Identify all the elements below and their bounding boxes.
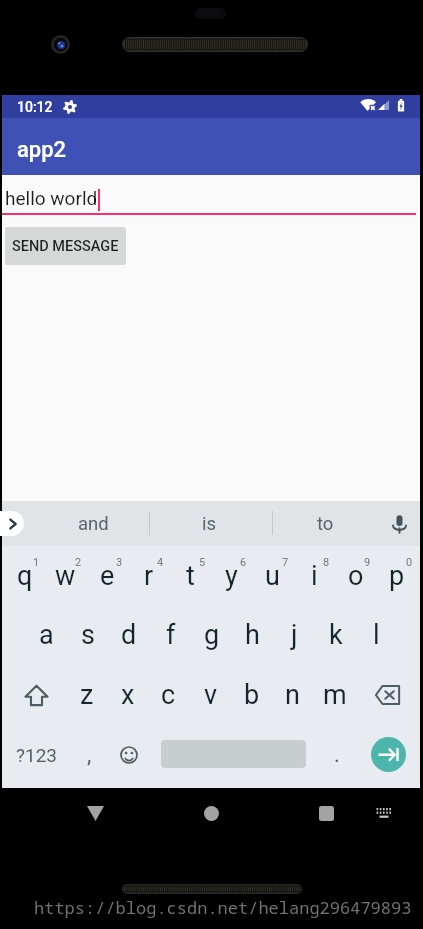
button[interactable]: r bbox=[128, 546, 169, 606]
staticText: t bbox=[186, 560, 195, 592]
button[interactable]: Home bbox=[189, 791, 233, 835]
button[interactable]: Shift bbox=[14, 665, 59, 725]
staticText: c bbox=[161, 679, 176, 711]
staticText: s bbox=[81, 619, 95, 651]
staticText: q bbox=[17, 560, 33, 592]
button[interactable]: to bbox=[280, 501, 370, 546]
button[interactable]: p bbox=[376, 546, 417, 606]
staticText: w bbox=[55, 560, 76, 592]
button[interactable]: Expand suggestions bbox=[0, 511, 24, 536]
staticText: l bbox=[373, 619, 380, 651]
button[interactable]: ?123 bbox=[10, 725, 64, 785]
staticText: i bbox=[311, 560, 318, 592]
staticText: 9 bbox=[364, 556, 371, 569]
staticText: y bbox=[225, 560, 238, 592]
staticText: e bbox=[100, 560, 115, 592]
button[interactable]: a bbox=[26, 605, 67, 665]
button[interactable]: l bbox=[356, 605, 397, 665]
button[interactable]: Switch keyboard bbox=[362, 791, 406, 835]
staticText: 6 bbox=[240, 556, 247, 569]
staticText: https://blog.csdn.net/helang296479893 bbox=[34, 896, 412, 919]
button[interactable]: e bbox=[87, 546, 128, 606]
staticText: to bbox=[317, 513, 334, 535]
staticText: k bbox=[329, 619, 343, 651]
staticText: 10:12 bbox=[17, 99, 53, 115]
button[interactable]: w bbox=[45, 546, 86, 606]
staticText: 3 bbox=[116, 556, 123, 569]
button[interactable]: Back bbox=[73, 791, 117, 835]
button[interactable]: k bbox=[315, 605, 356, 665]
staticText: hello world bbox=[5, 187, 98, 209]
staticText: p bbox=[389, 560, 405, 592]
staticText: 7 bbox=[282, 556, 289, 569]
button[interactable]: y bbox=[211, 546, 252, 606]
button[interactable]: j bbox=[274, 605, 315, 665]
button[interactable]: f bbox=[150, 605, 191, 665]
button[interactable]: g bbox=[191, 605, 232, 665]
button[interactable]: n bbox=[272, 665, 313, 725]
button[interactable]: t bbox=[170, 546, 211, 606]
staticText: 5 bbox=[199, 556, 206, 569]
staticText: a bbox=[39, 619, 54, 651]
staticText: o bbox=[348, 560, 364, 592]
staticText: 4 bbox=[157, 556, 164, 569]
button[interactable]: , bbox=[69, 725, 110, 785]
staticText: . bbox=[334, 742, 340, 768]
staticText: ?123 bbox=[16, 744, 58, 766]
staticText: d bbox=[121, 619, 137, 651]
staticText: n bbox=[285, 679, 300, 711]
staticText: m bbox=[323, 679, 347, 711]
button[interactable]: Enter bbox=[371, 737, 406, 772]
button[interactable]: o bbox=[335, 546, 376, 606]
button[interactable]: Backspace bbox=[365, 665, 410, 725]
button[interactable]: b bbox=[231, 665, 272, 725]
button[interactable]: u bbox=[252, 546, 293, 606]
staticText: 8 bbox=[323, 556, 330, 569]
staticText: SEND MESSAGE bbox=[12, 238, 119, 255]
staticText: g bbox=[204, 619, 220, 651]
button[interactable]: Emoji bbox=[108, 725, 149, 785]
button[interactable]: s bbox=[67, 605, 108, 665]
staticText: , bbox=[87, 742, 92, 768]
button[interactable]: c bbox=[148, 665, 189, 725]
staticText: z bbox=[80, 679, 94, 711]
button[interactable]: is bbox=[164, 501, 254, 546]
button[interactable]: m bbox=[314, 665, 355, 725]
button[interactable]: hello world bbox=[2, 175, 420, 215]
staticText: 2 bbox=[75, 556, 82, 569]
button[interactable]: x bbox=[107, 665, 148, 725]
button[interactable]: z bbox=[66, 665, 107, 725]
button[interactable]: and bbox=[48, 501, 138, 546]
button[interactable]: h bbox=[232, 605, 273, 665]
staticText: f bbox=[166, 619, 176, 651]
staticText: x bbox=[121, 679, 135, 711]
staticText: b bbox=[244, 679, 260, 711]
staticText: 0 bbox=[406, 556, 413, 569]
button[interactable]: d bbox=[108, 605, 149, 665]
button[interactable]: Voice input bbox=[384, 509, 414, 539]
staticText: is bbox=[202, 513, 217, 535]
button[interactable]: . bbox=[316, 725, 357, 785]
staticText: v bbox=[204, 679, 218, 711]
button[interactable]: Recent apps bbox=[304, 791, 348, 835]
staticText: 1 bbox=[33, 556, 40, 569]
button[interactable]: i bbox=[294, 546, 335, 606]
staticText: app2 bbox=[17, 137, 67, 163]
button[interactable]: v bbox=[190, 665, 231, 725]
staticText: r bbox=[144, 560, 154, 592]
staticText: h bbox=[245, 619, 260, 651]
staticText: and bbox=[78, 513, 109, 535]
button[interactable]: SEND MESSAGE bbox=[5, 227, 126, 265]
staticText: u bbox=[265, 560, 280, 592]
staticText: j bbox=[291, 619, 298, 651]
button[interactable]: q bbox=[4, 546, 45, 606]
